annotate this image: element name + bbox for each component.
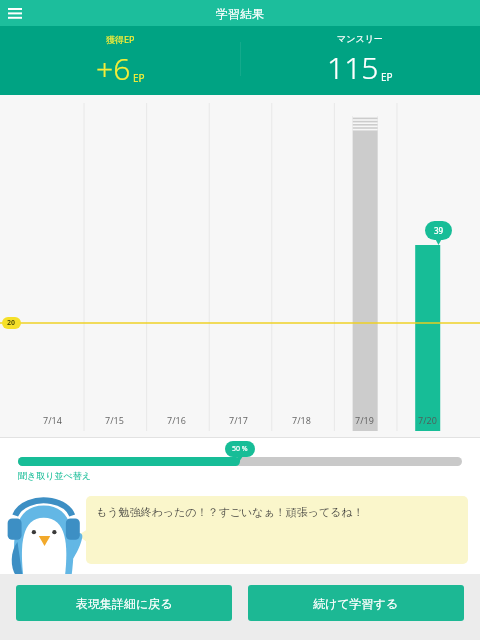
staticText: EP — [133, 71, 145, 85]
staticText: 20 — [7, 318, 16, 328]
staticText: マンスリー — [337, 33, 383, 44]
staticText: もう勉強終わったの！？すごいなぁ！頑張ってるね！ — [96, 505, 364, 519]
staticText: 115 — [327, 47, 379, 88]
staticText: 50 % — [232, 444, 248, 454]
staticText: 7/18 — [292, 414, 311, 426]
staticText: 39 — [434, 225, 444, 236]
staticText: 続けて学習する — [313, 596, 399, 611]
staticText: 聞き取り並べ替え — [18, 470, 91, 481]
staticText: 7/17 — [229, 414, 248, 426]
staticText: 7/16 — [167, 414, 186, 426]
staticText: 7/19 — [355, 414, 374, 426]
button[interactable]: 表現集詳細に戻る — [16, 585, 232, 621]
staticText: 7/14 — [43, 414, 62, 426]
staticText: 7/15 — [105, 414, 124, 426]
staticText: 学習結果 — [216, 6, 264, 21]
staticText: 7/20 — [418, 414, 437, 426]
staticText: EP — [381, 70, 393, 84]
staticText: +6 — [96, 48, 131, 89]
staticText: 獲得EP — [106, 33, 135, 45]
staticText: 表現集詳細に戻る — [76, 596, 173, 611]
button[interactable]: 続けて学習する — [248, 585, 464, 621]
button[interactable]: Menu — [0, 0, 30, 26]
